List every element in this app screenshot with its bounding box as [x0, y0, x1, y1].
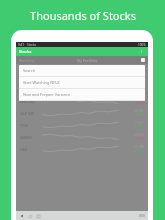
staticText: FTSE: [20, 123, 42, 128]
staticText: NASDAQ: [20, 99, 42, 104]
button[interactable]: AAPL: [16, 64, 148, 76]
staticText: 9:41: [18, 43, 24, 47]
staticText: 13,240: [134, 97, 144, 101]
staticText: My Portfolio: [77, 58, 98, 63]
staticText: 4,210: [135, 109, 144, 113]
staticText: 15,780: [134, 145, 144, 149]
staticText: 34,098: [134, 85, 144, 89]
staticText: AAPL: [20, 68, 42, 73]
staticText: 28,430: [134, 133, 144, 137]
staticText: 7,512: [135, 121, 144, 125]
button[interactable]: New and Prepare Variance: [19, 89, 145, 100]
staticText: +0.44%: [133, 149, 144, 153]
staticText: +0.57%: [133, 113, 144, 117]
button[interactable]: Home: [27, 213, 33, 219]
button[interactable]: S&P 500: [16, 107, 148, 119]
staticText: Thousands of Stocks: [30, 8, 136, 23]
staticText: Stocks: [19, 49, 32, 54]
staticText: -0.18%: [134, 137, 144, 141]
staticText: Start Watching NFLX: [23, 80, 60, 85]
button[interactable]: FTSE: [16, 119, 148, 131]
staticText: +0.09%: [133, 125, 144, 129]
button[interactable]: NIKKEI: [16, 131, 148, 143]
button[interactable]: Stocks: [16, 47, 148, 56]
staticText: Search: [23, 68, 36, 73]
staticText: Indices: [20, 78, 31, 82]
button[interactable]: DAX: [16, 143, 148, 155]
button[interactable]: Start Watching NFLX: [19, 77, 145, 88]
button[interactable]: DJIA: [16, 83, 148, 95]
staticText: 100%: [138, 43, 146, 47]
staticText: DJIA: [20, 87, 42, 92]
staticText: -0.34%: [134, 101, 144, 105]
staticText: Stocks: [27, 43, 37, 47]
button[interactable]: Back: [19, 213, 25, 219]
staticText: New and Prepare Variance: [23, 92, 71, 97]
button[interactable]: Search: [19, 65, 145, 76]
button[interactable]: Recent apps: [35, 213, 41, 219]
staticText: Watchlist: [19, 58, 35, 63]
staticText: DAX: [20, 147, 42, 152]
button[interactable]: NASDAQ: [16, 95, 148, 107]
staticText: S&P 500: [20, 111, 42, 116]
staticText: NIKKEI: [20, 135, 42, 140]
button[interactable]: Add: [141, 58, 145, 62]
button[interactable]: More options: [138, 48, 145, 55]
